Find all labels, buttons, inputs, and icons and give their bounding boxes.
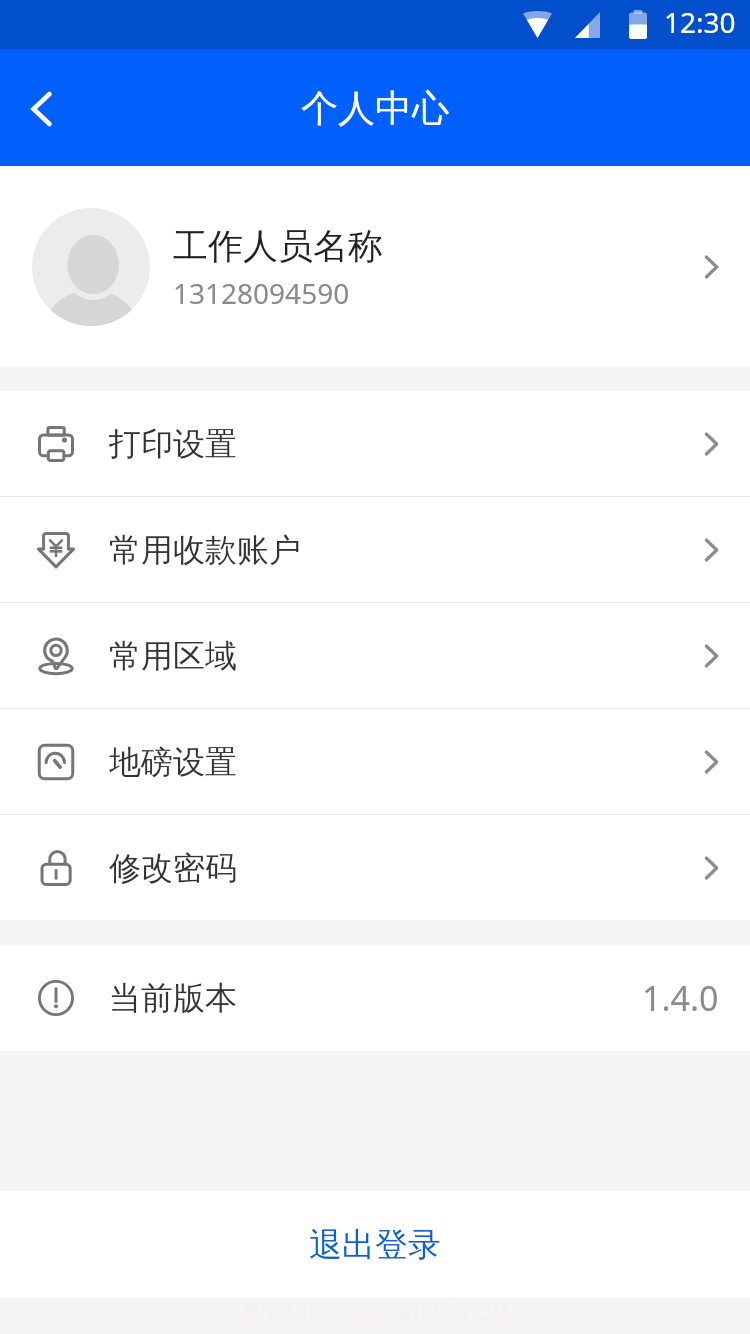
staticText: 工作人员名称 [173, 224, 383, 268]
staticText: 修改密码 [109, 848, 237, 888]
button[interactable]: Back [0, 49, 86, 166]
button[interactable]: 常用区域 [0, 603, 750, 708]
staticText: 当前版本 [109, 978, 237, 1018]
button[interactable]: 地磅设置 [0, 709, 750, 814]
button[interactable]: 常用收款账户 [0, 497, 750, 602]
staticText: 12:30 [664, 3, 736, 41]
button[interactable]: 修改密码 [0, 815, 750, 920]
staticText: 13128094590 [173, 274, 350, 312]
staticText: 退出登录 [309, 1224, 441, 1266]
button[interactable]: 当前版本 [0, 945, 750, 1051]
staticText: 1.4.0 [642, 975, 719, 1021]
button[interactable]: 退出登录 [0, 1191, 750, 1298]
button[interactable]: 工作人员名称 [0, 166, 750, 367]
staticText: 地磅设置 [109, 742, 237, 782]
staticText: 个人中心 [301, 85, 449, 132]
staticText: 常用区域 [109, 636, 237, 676]
staticText: 常用收款账户 [109, 530, 301, 570]
button[interactable]: 打印设置 [0, 391, 750, 496]
staticText: 打印设置 [109, 424, 237, 464]
